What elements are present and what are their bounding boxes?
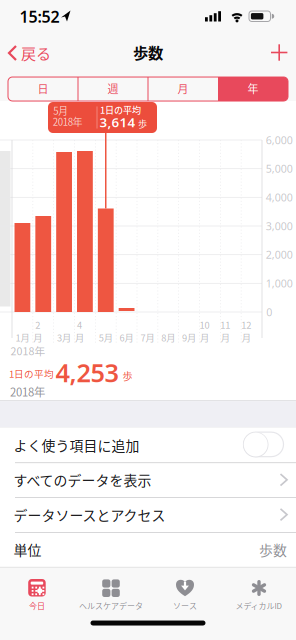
staticText: 10 [199, 318, 209, 331]
staticText: 2018年 [10, 343, 45, 358]
staticText: データソースとアクセス [13, 505, 165, 525]
staticText: 0 [266, 305, 272, 319]
button[interactable]: ソース [148, 568, 222, 640]
staticText: 3月 [57, 331, 71, 344]
staticText: 3,000 [266, 219, 293, 233]
button[interactable]: よく使う項目に追加 [243, 432, 283, 458]
staticText: よく使う項目に追加 [13, 435, 139, 455]
button[interactable]: 今日 [0, 568, 74, 640]
button[interactable]: 年 [218, 77, 288, 101]
staticText: 週 [107, 81, 118, 96]
button[interactable]: 日 [8, 77, 78, 101]
staticText: 6月 [120, 331, 134, 344]
staticText: 1,000 [266, 276, 293, 290]
staticText: 15:52 [19, 6, 59, 27]
staticText: メディカルID [235, 600, 282, 611]
staticText: 1日の平均 [100, 103, 141, 116]
staticText: 歩数 [259, 539, 287, 560]
staticText: 2018年 [10, 383, 45, 400]
staticText: 1日の平均 [9, 366, 54, 380]
staticText: 月 [242, 331, 251, 344]
staticText: 歩数 [133, 41, 163, 63]
staticText: 5月 [99, 331, 113, 344]
staticText: 月 [221, 331, 230, 344]
staticText: すべてのデータを表示 [13, 470, 151, 490]
button[interactable]: 追加 [264, 37, 294, 67]
staticText: ソース [173, 600, 197, 611]
button[interactable]: 月 [148, 77, 218, 101]
button[interactable]: すべてのデータを表示 [0, 462, 296, 497]
button[interactable]: メディカルID [222, 568, 296, 640]
staticText: 月 [177, 81, 188, 96]
button[interactable]: 単位 [0, 532, 296, 567]
staticText: 12 [241, 318, 251, 331]
staticText: ヘルスケアデータ [79, 600, 143, 611]
staticText: 4 [77, 318, 82, 331]
staticText: 戻る [21, 42, 51, 64]
staticText: 5,000 [266, 162, 293, 176]
button[interactable]: データソースとアクセス [0, 497, 296, 532]
staticText: 4,000 [266, 190, 293, 204]
staticText: 11 [220, 318, 230, 331]
staticText: 年 [247, 81, 258, 96]
staticText: 歩 [122, 369, 132, 383]
staticText: 1月 [15, 331, 29, 344]
staticText: 5月 [53, 103, 68, 118]
staticText: 日 [37, 81, 48, 96]
staticText: 2018年 [53, 114, 83, 129]
staticText: 6,000 [266, 133, 293, 147]
staticText: 7月 [140, 331, 154, 344]
staticText: 月 [75, 331, 84, 344]
staticText: 月 [33, 331, 42, 344]
staticText: 9月 [182, 331, 196, 344]
staticText: 単位 [13, 539, 41, 560]
staticText: 2,000 [266, 248, 293, 262]
button[interactable]: 週 [78, 77, 148, 101]
staticText: 3,614 [99, 113, 135, 131]
staticText: 4,253 [55, 356, 118, 389]
staticText: 今日 [29, 600, 45, 611]
staticText: 8月 [161, 331, 175, 344]
staticText: 2 [35, 318, 40, 331]
button[interactable]: 戻る [0, 38, 57, 68]
staticText: 月 [200, 331, 209, 344]
staticText: 歩 [138, 117, 147, 130]
button[interactable]: ヘルスケアデータ [74, 568, 148, 640]
